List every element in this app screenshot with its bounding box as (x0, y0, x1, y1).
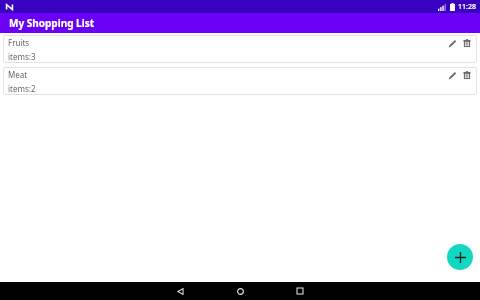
staticText: Meat (8, 69, 28, 80)
staticText: 11:28 (458, 2, 476, 12)
button[interactable]: Edit (446, 37, 458, 49)
button[interactable]: Recent apps (291, 282, 309, 300)
staticText: items:2 (8, 83, 36, 94)
staticText: items:3 (8, 51, 36, 62)
staticText: Fruits (8, 37, 30, 48)
button[interactable]: Fruits (3, 35, 477, 63)
staticText: My Shopping List (9, 16, 94, 30)
button[interactable]: Delete (461, 69, 473, 81)
button[interactable]: Add shopping list (447, 244, 473, 270)
button[interactable]: Delete (461, 37, 473, 49)
button[interactable]: Back (171, 282, 189, 300)
button[interactable]: Edit (446, 69, 458, 81)
button[interactable]: Meat (3, 67, 477, 95)
button[interactable]: Home (231, 282, 249, 300)
